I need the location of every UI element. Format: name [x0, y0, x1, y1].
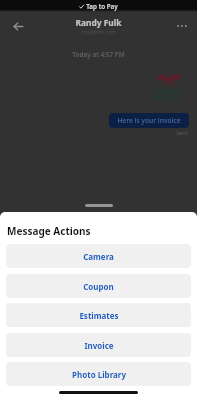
button[interactable]: Invoice — [6, 333, 191, 357]
button[interactable]: Coupon — [6, 274, 191, 298]
staticText: rtfulk@me.com — [81, 29, 116, 36]
staticText: Invoice — [84, 340, 114, 351]
staticText: Tap to Pay — [86, 2, 118, 11]
button[interactable]: Photo Library — [6, 362, 191, 386]
staticText: Karla's Kloset — [154, 85, 183, 103]
staticText: Coupon — [83, 281, 114, 292]
staticText: Estimates — [79, 310, 119, 321]
staticText: Camera — [83, 251, 114, 262]
staticText: Photo Library — [72, 369, 126, 380]
staticText: Randy Fulk — [75, 17, 122, 28]
staticText: Sent — [176, 129, 188, 136]
button[interactable]: Back — [10, 18, 26, 34]
button[interactable]: Estimates — [6, 303, 191, 327]
staticText: Here is your invoice — [117, 116, 181, 125]
button[interactable]: More options — [174, 18, 190, 34]
staticText: Message Actions — [7, 224, 91, 238]
button[interactable]: Camera — [6, 244, 191, 268]
staticText: Today at 4:57 PM — [72, 50, 125, 59]
button[interactable]: Here is your invoice — [109, 113, 189, 128]
